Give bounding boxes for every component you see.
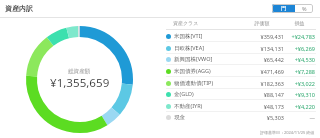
staticText: ¥359,431 bbox=[242, 33, 284, 40]
button[interactable]: 物価連動債(TIP) bbox=[166, 77, 316, 89]
staticText: 不動産(IYR) bbox=[174, 102, 242, 110]
staticText: ¥471,469 bbox=[242, 68, 284, 75]
staticText: ¥48,173 bbox=[242, 103, 284, 110]
staticText: ¥182,363 bbox=[242, 80, 284, 87]
staticText: 評価額 bbox=[241, 20, 283, 26]
staticText: — bbox=[284, 114, 315, 121]
staticText: ¥5,303 bbox=[242, 114, 284, 121]
staticText: ¥65,442 bbox=[242, 56, 284, 63]
staticText: 現金 bbox=[174, 114, 242, 121]
staticText: +¥4,220 bbox=[284, 103, 315, 110]
staticText: 円 bbox=[281, 5, 287, 12]
staticText: 総資産額 bbox=[68, 68, 91, 75]
staticText: ¥88,147 bbox=[242, 91, 284, 98]
staticText: 資産クラス bbox=[173, 20, 241, 26]
staticText: 米国債券(AGG) bbox=[174, 67, 242, 75]
staticText: +¥6,269 bbox=[284, 45, 315, 52]
staticText: 日欧株[VEA] bbox=[174, 44, 242, 52]
staticText: ¥134,131 bbox=[242, 45, 284, 52]
staticText: +¥4,530 bbox=[284, 56, 315, 63]
staticText: 金(GLD) bbox=[174, 90, 242, 98]
staticText: 物価連動債(TIP) bbox=[174, 79, 242, 87]
staticText: +¥3,022 bbox=[284, 80, 315, 87]
staticText: 米国株[VTI] bbox=[174, 32, 242, 40]
staticText: ¥1,355,659 bbox=[50, 75, 110, 91]
staticText: +¥7,288 bbox=[284, 68, 315, 75]
staticText: 評価基準日：2024/11/25 終値 bbox=[260, 130, 315, 135]
staticText: % bbox=[302, 5, 307, 12]
button[interactable]: 米国債券(AGG) bbox=[166, 65, 316, 77]
button[interactable]: 円 bbox=[272, 4, 295, 13]
staticText: 新興国株[VWO] bbox=[174, 55, 242, 63]
button[interactable]: 米国株[VTI] bbox=[166, 30, 316, 42]
staticText: +¥24,783 bbox=[284, 33, 315, 40]
button[interactable]: 現金 bbox=[166, 111, 316, 123]
button[interactable]: 新興国株[VWO] bbox=[166, 53, 316, 65]
button[interactable]: % bbox=[295, 4, 313, 13]
staticText: +¥9,310 bbox=[284, 91, 315, 98]
button[interactable]: 金(GLD) bbox=[166, 88, 316, 100]
staticText: 資産内訳 bbox=[5, 4, 33, 13]
staticText: 損益 bbox=[283, 20, 316, 26]
button[interactable]: 日欧株[VEA] bbox=[166, 42, 316, 54]
button[interactable]: 不動産(IYR) bbox=[166, 100, 316, 112]
